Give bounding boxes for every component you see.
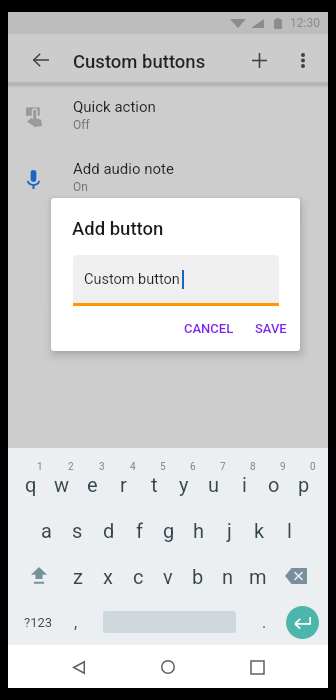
staticText: b [192, 565, 204, 588]
staticText: l [287, 519, 292, 542]
staticText: 3 [99, 461, 105, 473]
button[interactable]: k [244, 507, 274, 553]
staticText: n [222, 565, 234, 588]
button[interactable]: Back [17, 36, 65, 84]
button[interactable]: o [259, 461, 289, 507]
staticText: q [25, 473, 37, 496]
staticText: f [136, 519, 143, 542]
button[interactable]: y [169, 461, 199, 507]
button[interactable]: Home [148, 647, 188, 687]
button[interactable]: n [213, 553, 243, 599]
staticText: r [120, 473, 127, 496]
staticText: SAVE [255, 321, 287, 336]
button[interactable]: u [199, 461, 229, 507]
button[interactable]: Enter [278, 599, 319, 645]
staticText: c [133, 565, 144, 588]
button[interactable]: f [124, 507, 154, 553]
staticText: 1 [37, 461, 43, 473]
staticText: 8 [250, 461, 256, 473]
button[interactable]: Add [237, 38, 281, 82]
button[interactable]: Backspace [273, 553, 319, 599]
staticText: 9 [280, 461, 286, 473]
button[interactable]: Custom button [73, 255, 279, 303]
button[interactable]: g [154, 507, 184, 553]
button[interactable]: r [108, 461, 139, 507]
staticText: e [87, 473, 98, 496]
staticText: y [179, 473, 189, 496]
button[interactable]: SAVE [247, 314, 295, 343]
staticText: CANCEL [184, 321, 234, 336]
button[interactable]: Space [90, 599, 250, 645]
staticText: 7 [220, 461, 226, 473]
staticText: o [268, 473, 280, 496]
button[interactable]: , [61, 599, 90, 645]
button[interactable]: l [274, 507, 304, 553]
staticText: g [163, 519, 175, 542]
staticText: x [103, 565, 113, 588]
button[interactable]: . [250, 599, 278, 645]
button[interactable]: Add audio note [8, 148, 328, 210]
button[interactable]: t [139, 461, 169, 507]
staticText: , [74, 613, 78, 632]
button[interactable]: i [229, 461, 259, 507]
staticText: k [254, 519, 265, 542]
button[interactable]: j [214, 507, 244, 553]
staticText: v [163, 565, 173, 588]
button[interactable]: v [153, 553, 183, 599]
staticText: Quick action [73, 98, 156, 116]
staticText: u [208, 473, 220, 496]
staticText: 2 [68, 461, 74, 473]
staticText: On [73, 180, 88, 194]
button[interactable]: e [77, 461, 108, 507]
button[interactable]: Recents [237, 647, 277, 687]
staticText: 6 [190, 461, 196, 473]
button[interactable]: d [93, 507, 124, 553]
staticText: Add audio note [73, 160, 174, 178]
staticText: 4 [130, 461, 136, 473]
button[interactable]: z [62, 553, 93, 599]
staticText: ?123 [24, 615, 53, 630]
staticText: j [227, 519, 232, 542]
button[interactable]: s [62, 507, 93, 553]
button[interactable]: w [46, 461, 77, 507]
button[interactable]: h [184, 507, 214, 553]
button[interactable]: p [289, 461, 319, 507]
staticText: Custom button [84, 271, 180, 288]
staticText: i [242, 473, 247, 496]
staticText: a [41, 519, 52, 542]
button[interactable]: m [243, 553, 273, 599]
button[interactable]: Quick action [8, 86, 328, 148]
staticText: t [151, 473, 158, 496]
staticText: m [249, 565, 267, 588]
staticText: 12:30 [290, 16, 320, 30]
button[interactable]: More options [282, 39, 324, 81]
button[interactable]: Back [59, 647, 99, 687]
button[interactable]: Shift [15, 553, 62, 599]
button[interactable]: CANCEL [176, 314, 242, 343]
staticText: Off [73, 118, 90, 132]
staticText: 5 [160, 461, 166, 473]
staticText: z [73, 565, 83, 588]
staticText: w [54, 473, 70, 496]
button[interactable]: x [93, 553, 123, 599]
button[interactable]: c [123, 553, 153, 599]
button[interactable]: ?123 [15, 599, 61, 645]
staticText: h [193, 519, 205, 542]
button[interactable]: b [183, 553, 213, 599]
staticText: 0 [310, 461, 316, 473]
staticText: d [103, 519, 115, 542]
button[interactable]: q [15, 461, 46, 507]
staticText: p [298, 473, 310, 496]
staticText: Custom buttons [73, 51, 206, 73]
staticText: s [72, 519, 83, 542]
staticText: . [262, 613, 267, 632]
button[interactable]: a [31, 507, 62, 553]
staticText: Add button [72, 218, 164, 240]
